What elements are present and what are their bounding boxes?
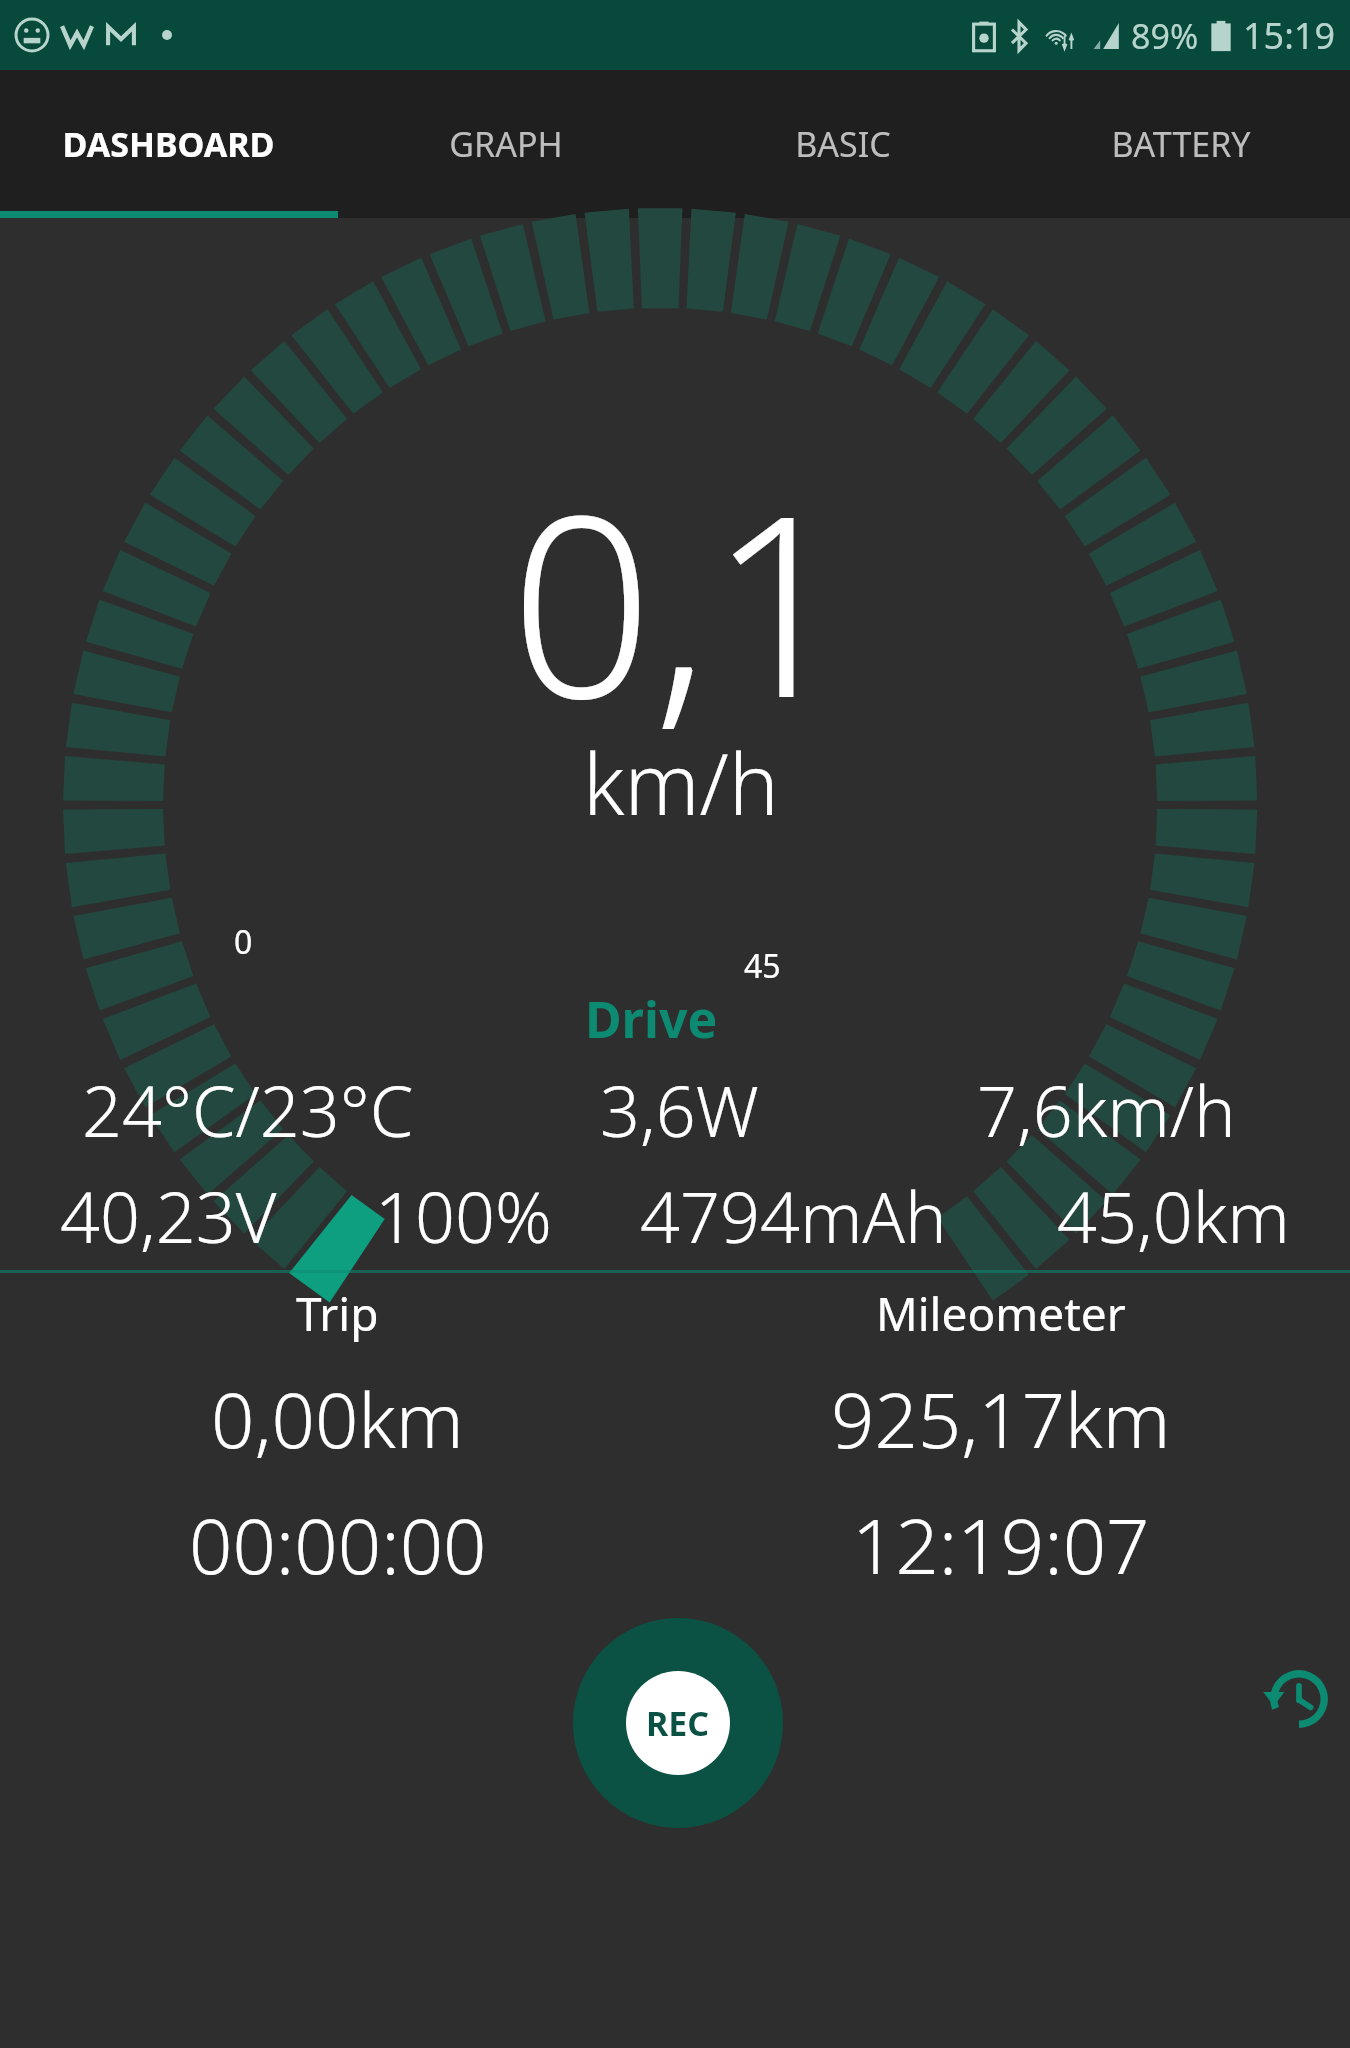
staticText: Drive <box>585 985 718 1053</box>
staticText: 00:00:00 <box>189 1493 487 1597</box>
staticText: GRAPH <box>449 121 563 167</box>
staticText: 12:19:07 <box>852 1493 1150 1597</box>
staticText: Mileometer <box>876 1282 1126 1345</box>
staticText: DASHBOARD <box>62 121 275 167</box>
staticText: 0,00km <box>211 1367 464 1471</box>
staticText: 40,23V <box>60 1168 277 1263</box>
staticText: BASIC <box>795 121 891 167</box>
staticText: 45 <box>744 944 781 988</box>
staticText: 4794mAh <box>640 1168 947 1263</box>
staticText: 15:19 <box>1243 11 1336 60</box>
button[interactable]: History <box>1256 1656 1342 1742</box>
staticText: REC <box>646 1700 710 1746</box>
staticText: BATTERY <box>1111 121 1251 167</box>
staticText: 0,1 <box>510 430 852 771</box>
staticText: 3,6W <box>600 1062 759 1157</box>
staticText: 89% <box>1131 13 1199 59</box>
staticText: 100% <box>375 1168 552 1263</box>
button[interactable]: GRAPH <box>337 70 674 218</box>
staticText: km/h <box>583 725 779 839</box>
staticText: Trip <box>296 1282 379 1345</box>
staticText: 24°C/23°C <box>82 1062 414 1157</box>
button[interactable]: BATTERY <box>1012 70 1350 218</box>
staticText: 0 <box>234 920 253 964</box>
button[interactable]: BASIC <box>674 70 1012 218</box>
staticText: 7,6km/h <box>977 1062 1236 1157</box>
staticText: 925,17km <box>831 1367 1171 1471</box>
button[interactable]: Record trip <box>573 1618 783 1828</box>
staticText: 45,0km <box>1057 1168 1290 1263</box>
button[interactable]: DASHBOARD <box>0 70 337 218</box>
